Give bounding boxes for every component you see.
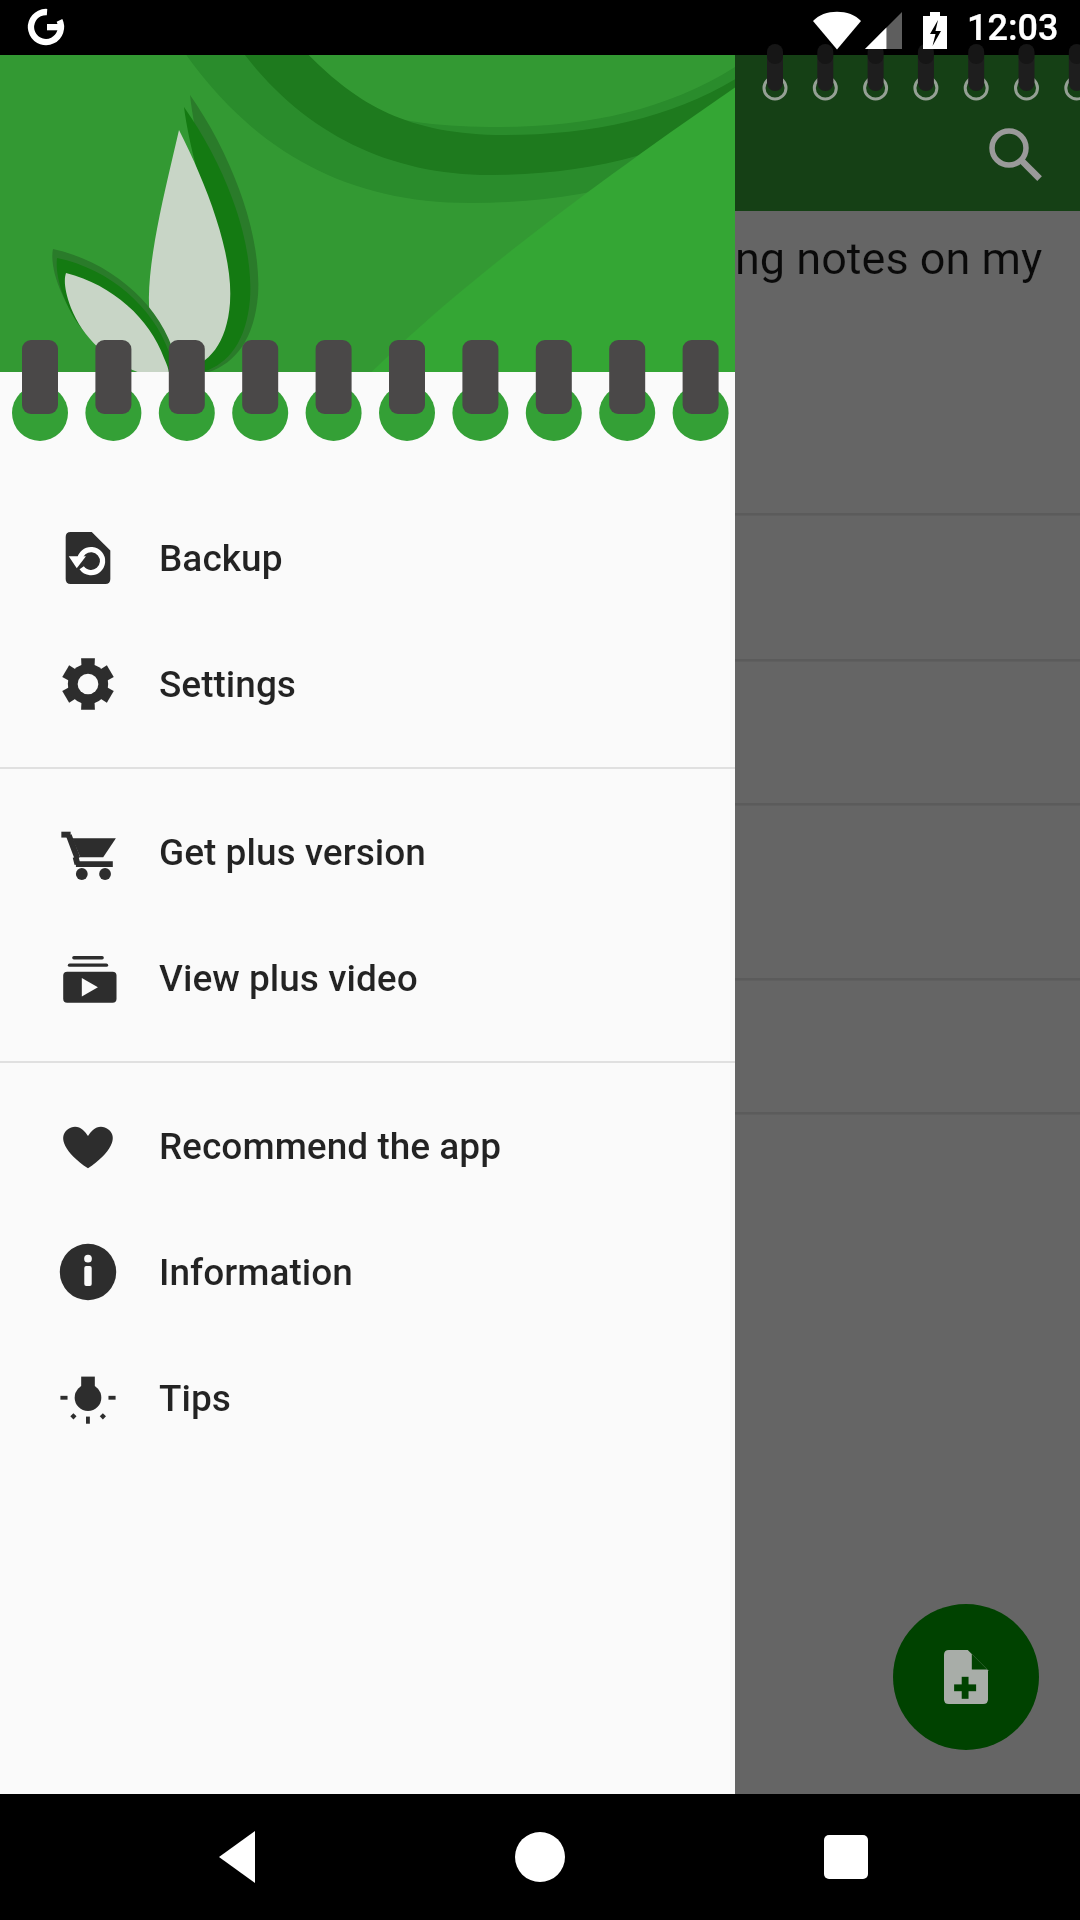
staticText: ng notes on my xyxy=(735,232,1043,285)
staticText: Get plus version xyxy=(159,831,426,874)
button[interactable]: Get plus version xyxy=(0,789,735,915)
staticText: View plus video xyxy=(159,957,418,1000)
button[interactable]: Backup xyxy=(0,495,735,621)
button[interactable]: Settings xyxy=(0,621,735,747)
button[interactable]: Back xyxy=(177,1794,303,1920)
staticText: Information xyxy=(159,1251,353,1294)
button[interactable]: Tips xyxy=(0,1335,735,1461)
button[interactable]: Search xyxy=(961,100,1071,210)
button[interactable]: Home xyxy=(477,1794,603,1920)
staticText: Settings xyxy=(159,663,296,706)
staticText: Recommend the app xyxy=(159,1125,502,1168)
button[interactable]: Recent apps xyxy=(783,1794,909,1920)
staticText: Tips xyxy=(159,1377,231,1420)
button[interactable]: View plus video xyxy=(0,915,735,1041)
staticText: 12:03 xyxy=(967,7,1059,49)
button[interactable]: Information xyxy=(0,1209,735,1335)
staticText: Backup xyxy=(159,537,283,580)
button[interactable]: Recommend the app xyxy=(0,1083,735,1209)
button[interactable]: New note xyxy=(893,1604,1039,1750)
